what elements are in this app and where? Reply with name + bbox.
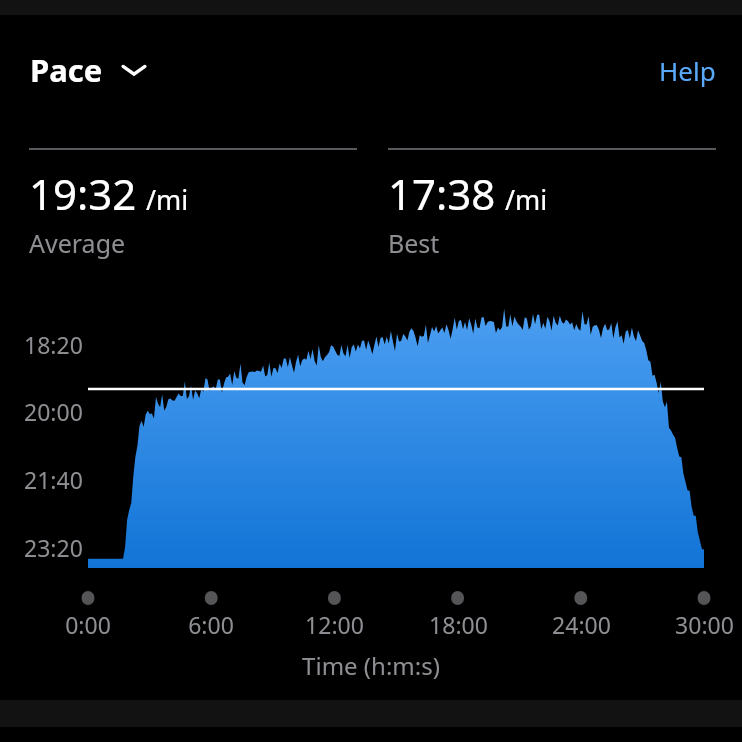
staticText: 20:00: [24, 396, 83, 427]
button[interactable]: 17:38: [388, 148, 716, 260]
button[interactable]: 19:32: [29, 148, 357, 260]
staticText: 21:40: [24, 464, 83, 495]
staticText: 23:20: [24, 532, 83, 563]
staticText: 17:38: [388, 165, 496, 222]
staticText: Help: [659, 53, 716, 88]
staticText: Time (h:m:s): [302, 649, 440, 682]
staticText: Average: [29, 226, 126, 260]
button[interactable]: Help: [651, 47, 724, 94]
staticText: 30:00: [675, 609, 734, 640]
staticText: 18:20: [24, 329, 83, 360]
staticText: 0:00: [65, 609, 111, 640]
staticText: /mi: [505, 181, 548, 218]
staticText: 6:00: [188, 609, 234, 640]
staticText: 12:00: [305, 609, 364, 640]
button[interactable]: Pace: [22, 45, 155, 95]
staticText: /mi: [146, 181, 189, 218]
staticText: 24:00: [552, 609, 611, 640]
staticText: 18:00: [429, 609, 488, 640]
staticText: 19:32: [29, 165, 137, 222]
staticText: Best: [388, 226, 440, 260]
staticText: Pace: [30, 49, 103, 91]
